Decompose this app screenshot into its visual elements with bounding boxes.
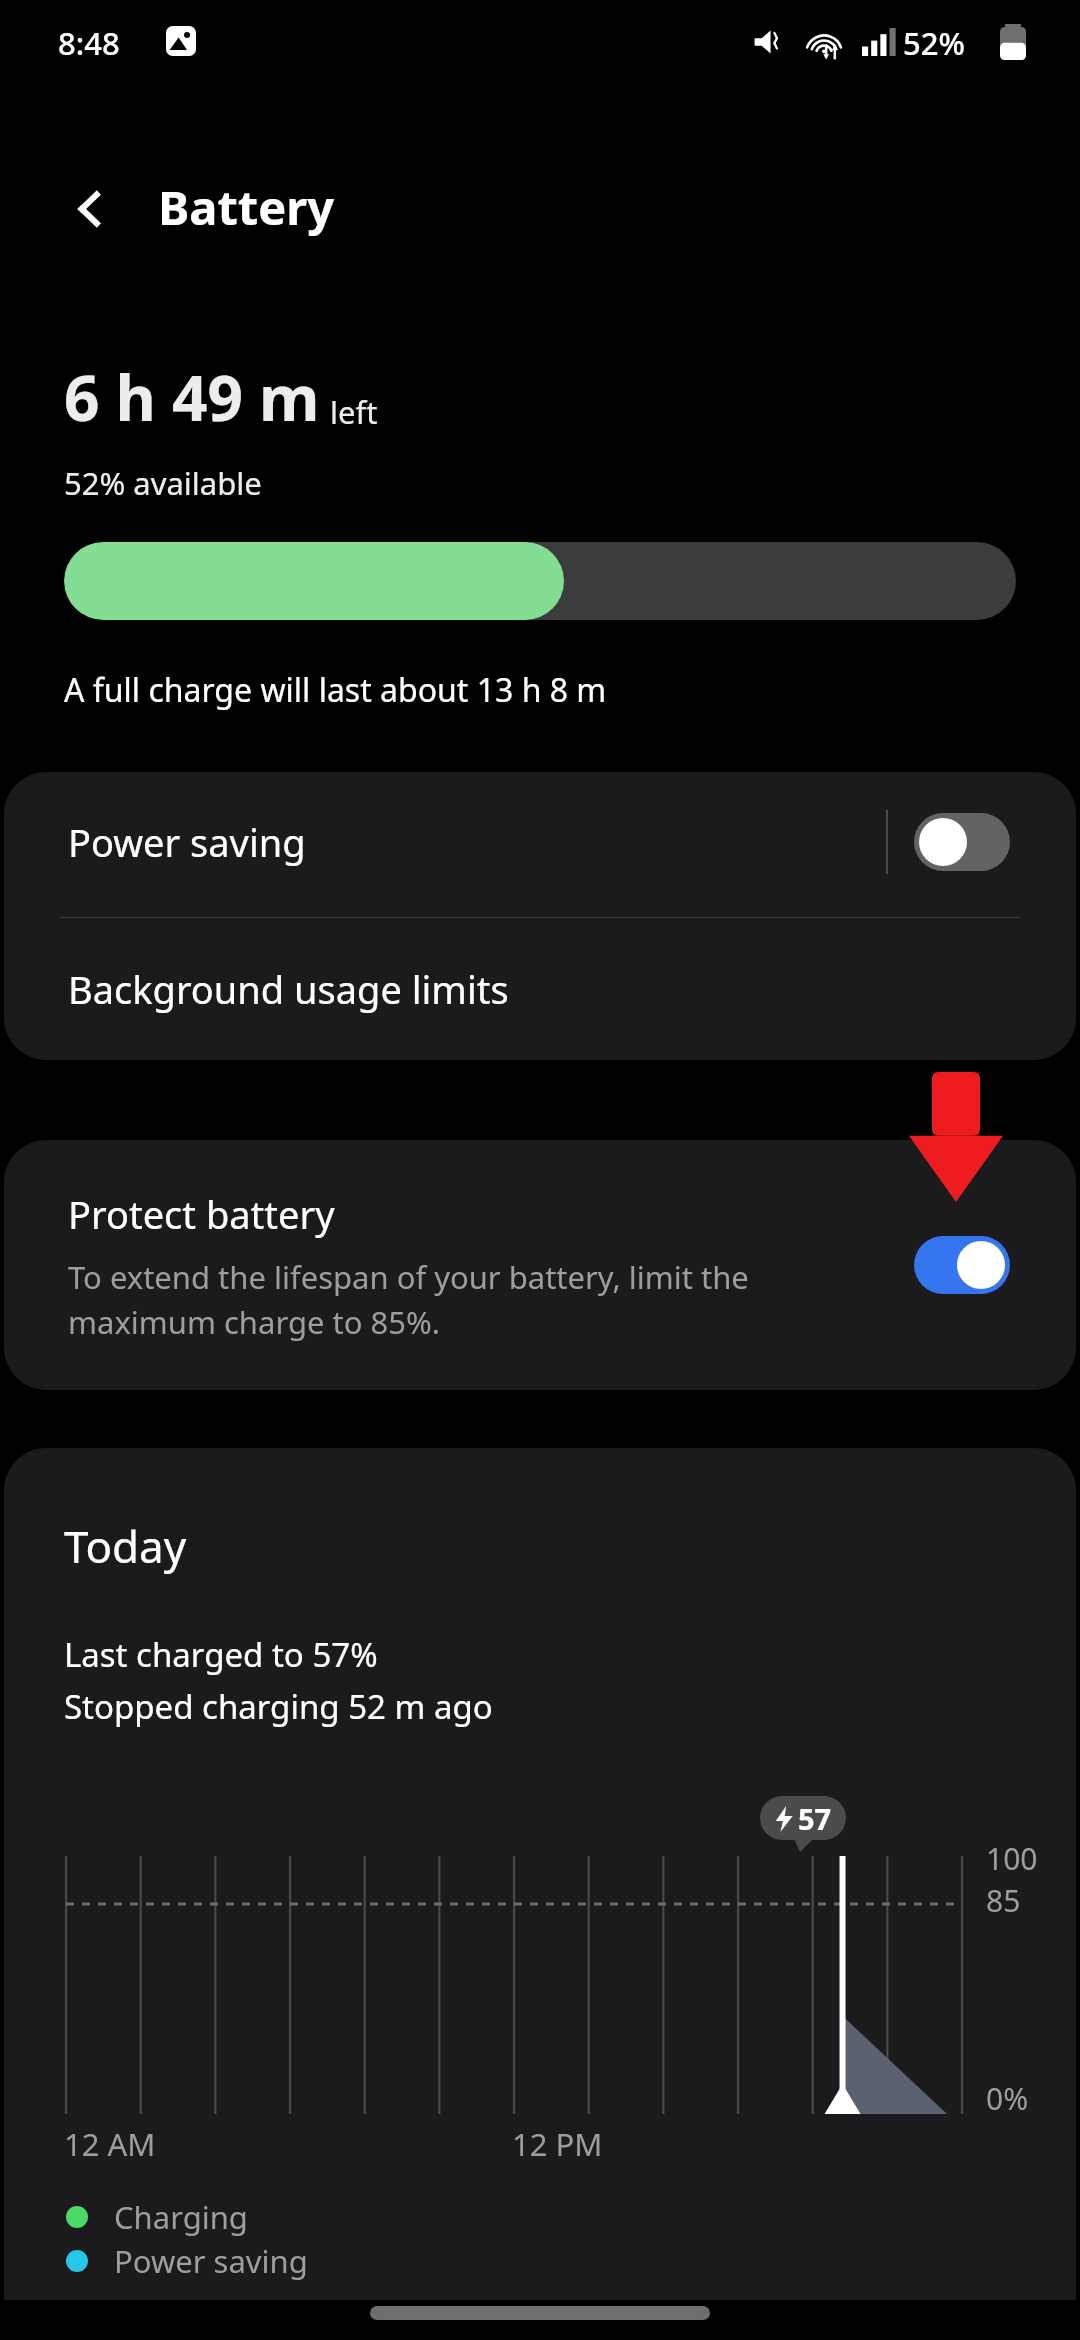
button[interactable]: Toggle off	[914, 813, 1010, 871]
staticText: 57	[798, 1799, 832, 1838]
staticText: 12 AM	[64, 2123, 156, 2165]
staticText: To extend the lifespan of your battery, …	[68, 1256, 848, 1343]
staticText: 85	[986, 1880, 1021, 1921]
staticText: 52% available	[64, 462, 262, 504]
staticText: Background usage limits	[68, 963, 509, 1015]
button[interactable]: Protect battery	[4, 1140, 1076, 1390]
staticText: 52%	[903, 22, 965, 64]
staticText: Power saving	[68, 816, 306, 868]
button[interactable]: Power saving	[4, 772, 1076, 912]
staticText: Battery	[158, 175, 335, 239]
staticText: 8:48	[58, 22, 120, 64]
staticText: 100	[986, 1838, 1038, 1879]
staticText: Power saving	[114, 2240, 308, 2282]
button[interactable]: Back	[52, 170, 130, 248]
staticText: Today	[64, 1516, 187, 1576]
staticText: Stopped charging 52 m ago	[64, 1684, 493, 1729]
staticText: 6 h 49 m	[64, 355, 320, 439]
staticText: 0%	[986, 2078, 1029, 2119]
staticText: 12 PM	[512, 2123, 603, 2165]
staticText: A full charge will last about 13 h 8 m	[64, 668, 607, 712]
staticText: Charging	[114, 2196, 248, 2238]
staticText: Protect battery	[68, 1188, 335, 1240]
button[interactable]: Background usage limits	[4, 918, 1076, 1060]
staticText: left	[330, 391, 378, 433]
staticText: Last charged to 57%	[64, 1632, 378, 1677]
button[interactable]: Toggle on	[914, 1236, 1010, 1294]
